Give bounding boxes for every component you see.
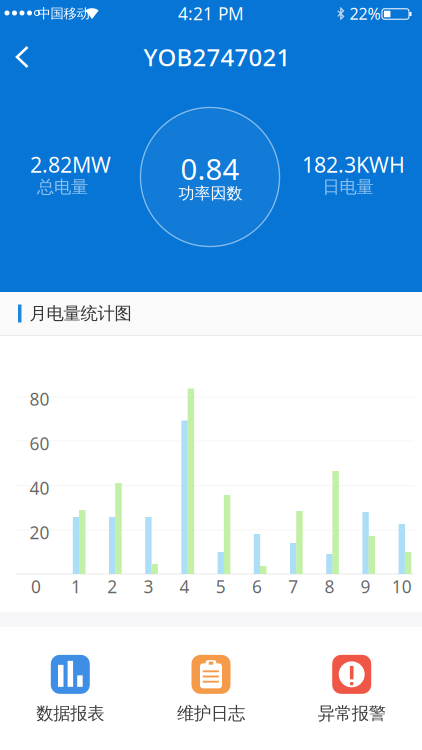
button[interactable]: 维护日志: [146, 657, 276, 721]
button[interactable]: 异常报警: [287, 657, 417, 721]
staticText: 40: [29, 476, 49, 499]
staticText: 20: [29, 521, 49, 544]
staticText: 4: [180, 575, 190, 598]
button[interactable]: 数据报表: [5, 657, 135, 721]
staticText: 日电量: [322, 176, 373, 198]
staticText: 0.84: [180, 149, 239, 188]
staticText: 8: [324, 575, 334, 598]
staticText: 数据报表: [36, 703, 104, 724]
staticText: 182.3KWH: [302, 150, 405, 179]
staticText: 9: [361, 575, 371, 598]
staticText: 异常报警: [318, 703, 386, 724]
button[interactable]: [0, 35, 44, 79]
staticText: 5: [216, 575, 226, 598]
staticText: 6: [252, 575, 262, 598]
staticText: 7: [288, 575, 298, 598]
staticText: 1: [71, 575, 81, 598]
staticText: 80: [29, 387, 49, 410]
staticText: 月电量统计图: [29, 303, 131, 324]
staticText: 维护日志: [177, 703, 245, 724]
staticText: 中国移动: [37, 5, 89, 22]
staticText: 2.82MW: [30, 150, 111, 179]
staticText: YOB2747021: [143, 41, 290, 73]
staticText: 10: [392, 575, 412, 598]
staticText: 功率因数: [178, 184, 242, 203]
staticText: 3: [143, 575, 153, 598]
staticText: 4:21 PM: [178, 2, 244, 25]
staticText: 2: [107, 575, 117, 598]
staticText: 60: [29, 432, 49, 455]
staticText: 0: [31, 575, 41, 598]
staticText: 总电量: [37, 176, 88, 198]
staticText: 22%: [349, 3, 380, 24]
